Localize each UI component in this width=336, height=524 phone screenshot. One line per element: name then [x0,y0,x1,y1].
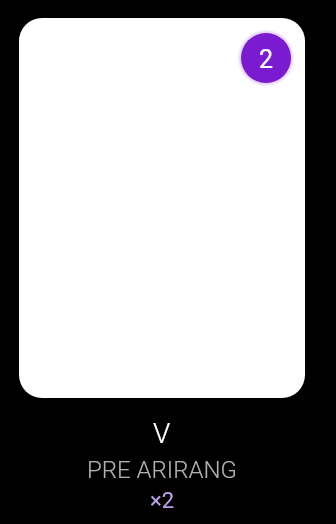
staticText: 2 [259,45,274,74]
staticText: V [153,417,171,450]
staticText: PRE ARIRANG [87,456,237,484]
button[interactable]: 2 repetitions left [19,18,305,398]
button[interactable]: 2 repetitions left [241,33,291,83]
staticText: ×2 [150,488,175,514]
